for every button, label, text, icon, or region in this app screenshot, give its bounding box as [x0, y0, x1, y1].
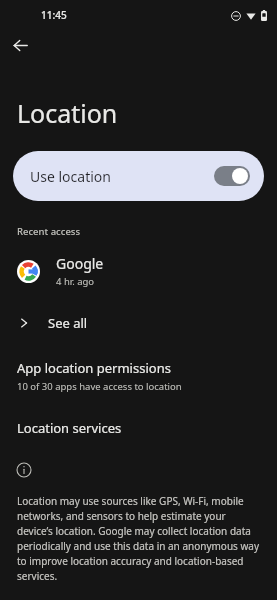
- staticText: Use location: [30, 167, 111, 186]
- button[interactable]: See all: [0, 310, 277, 336]
- staticText: 11:45: [41, 8, 67, 22]
- staticText: Google: [56, 254, 104, 273]
- button[interactable]: Location services: [0, 417, 277, 439]
- staticText: App location permissions: [17, 359, 171, 377]
- staticText: See all: [48, 314, 88, 332]
- button[interactable]: App location permissions: [0, 357, 277, 395]
- staticText: Location: [17, 96, 118, 130]
- staticText: 4 hr. ago: [56, 275, 95, 288]
- staticText: Recent access: [17, 225, 81, 238]
- other: Information: [15, 461, 32, 478]
- staticText: Location may use sources like GPS, Wi-Fi…: [17, 494, 263, 583]
- button[interactable]: Google: [0, 252, 277, 290]
- button[interactable]: Use location: [13, 151, 264, 201]
- button[interactable]: Back: [7, 32, 33, 58]
- staticText: 10 of 30 apps have access to location: [17, 380, 182, 393]
